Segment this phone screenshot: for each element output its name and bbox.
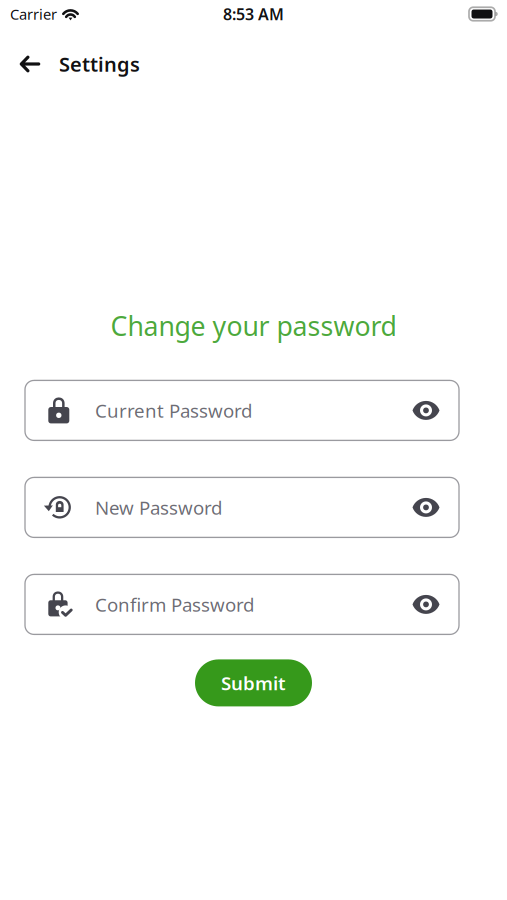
staticText: New Password [95,495,222,520]
button[interactable]: Submit [195,659,312,706]
staticText: Settings [59,51,140,77]
staticText: Confirm Password [95,592,254,617]
staticText: Carrier [10,4,57,24]
staticText: Current Password [95,398,252,423]
button[interactable]: Show New Password [406,485,446,529]
staticText: Change your password [110,308,396,343]
staticText: 8:53 AM [223,3,284,25]
staticText: Submit [221,670,286,695]
button[interactable]: Back [10,44,50,84]
button[interactable]: Show Current Password [406,388,446,432]
button[interactable]: Show Confirm Password [406,582,446,626]
